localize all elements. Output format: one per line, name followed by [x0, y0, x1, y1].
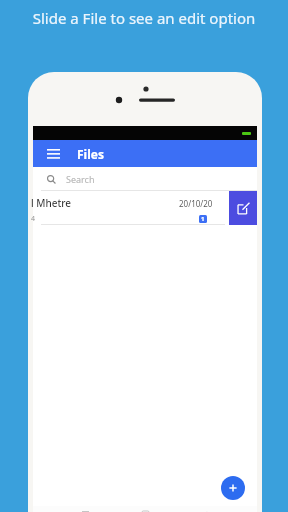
staticText: 4 — [31, 214, 36, 224]
staticText: Slide a File to see an edit option — [0, 8, 288, 28]
button[interactable]: Home — [137, 506, 153, 512]
button[interactable]: Add new file — [221, 476, 245, 500]
staticText: 1 — [201, 215, 205, 223]
staticText: Files — [77, 146, 104, 162]
button[interactable]: l Mhetre — [33, 191, 257, 225]
button[interactable]: Search — [33, 167, 257, 191]
staticText: 20/10/20 — [179, 198, 213, 209]
staticText: Search — [66, 173, 95, 185]
button[interactable]: Edit file — [229, 191, 257, 225]
staticText: l Mhetre — [31, 196, 72, 210]
button[interactable]: Open navigation menu — [43, 144, 63, 164]
button[interactable]: Recent apps — [77, 506, 93, 512]
